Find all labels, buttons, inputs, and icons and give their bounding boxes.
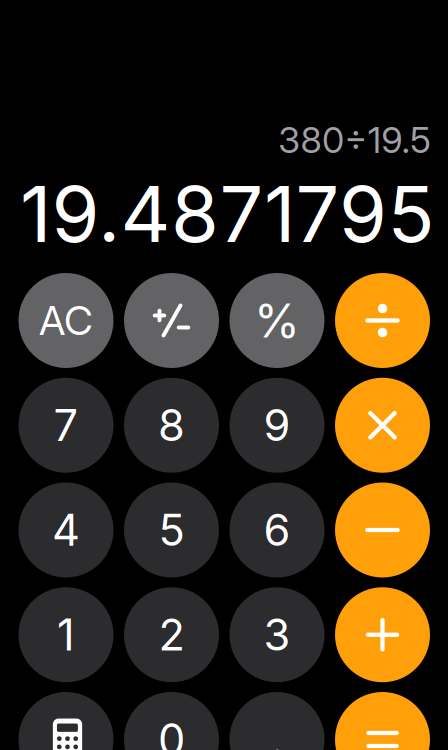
button[interactable]: Plus: [335, 587, 430, 682]
button[interactable]: 5: [124, 482, 219, 577]
button[interactable]: 8: [124, 378, 219, 473]
button[interactable]: Plus minus: [124, 273, 219, 368]
button[interactable]: 6: [229, 482, 324, 577]
button[interactable]: 9: [229, 378, 324, 473]
staticText: .: [271, 713, 283, 750]
staticText: 1: [57, 608, 75, 661]
button[interactable]: AC: [18, 273, 113, 368]
staticText: AC: [39, 296, 93, 345]
button[interactable]: 3: [229, 587, 324, 682]
staticText: 6: [263, 504, 290, 556]
staticText: 0: [158, 713, 185, 750]
button[interactable]: 4: [18, 482, 113, 577]
button[interactable]: 7: [18, 378, 113, 473]
staticText: 4: [52, 504, 80, 556]
staticText: 7: [53, 399, 78, 451]
button[interactable]: 1: [18, 587, 113, 682]
staticText: 380÷19.5: [278, 118, 431, 162]
button[interactable]: 2: [124, 587, 219, 682]
staticText: %: [254, 292, 300, 349]
staticText: 9: [263, 399, 290, 451]
button[interactable]: Divide: [335, 273, 430, 368]
button[interactable]: Multiply: [335, 378, 430, 473]
button[interactable]: .: [229, 692, 324, 750]
staticText: 2: [158, 608, 184, 661]
staticText: 19.4871795: [20, 167, 434, 261]
staticText: 8: [158, 399, 185, 451]
button[interactable]: Calculator: [18, 692, 113, 750]
staticText: 5: [158, 504, 184, 556]
button[interactable]: Minus: [335, 482, 430, 577]
button[interactable]: Equals: [335, 692, 430, 750]
staticText: 3: [263, 608, 290, 661]
button[interactable]: %: [229, 273, 324, 368]
button[interactable]: 0: [124, 692, 219, 750]
